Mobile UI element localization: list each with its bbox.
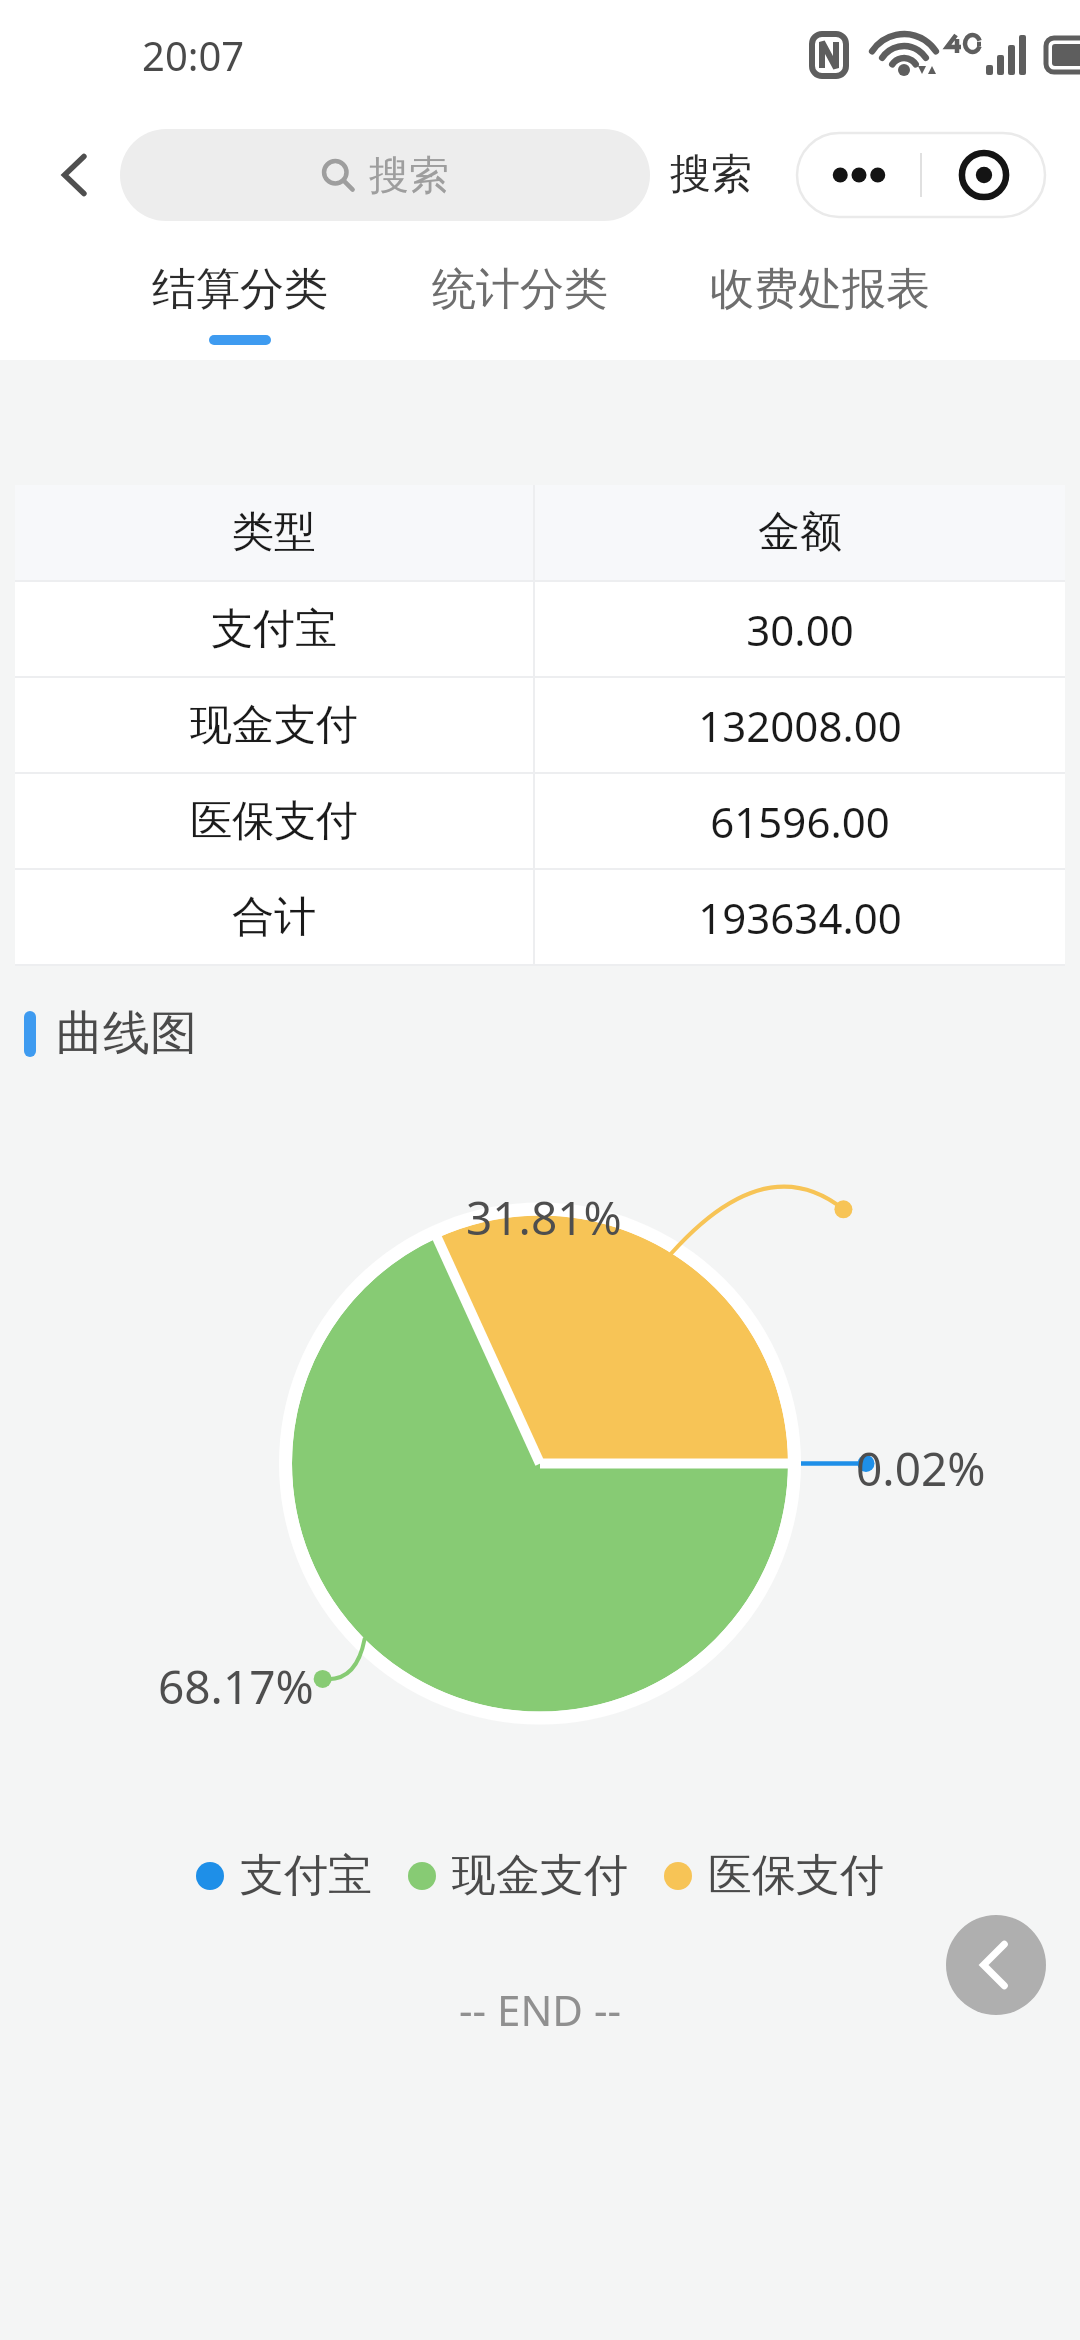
- button[interactable]: 结算分类: [100, 240, 380, 360]
- staticText: 现金支付: [452, 1848, 628, 1903]
- button[interactable]: 支付宝: [196, 1848, 372, 1903]
- staticText: 20:07: [142, 28, 245, 82]
- button[interactable]: 收费处报表: [659, 240, 980, 360]
- staticText: 支付宝: [211, 603, 337, 656]
- staticText: 合计: [232, 891, 316, 944]
- staticText: 曲线图: [56, 1004, 197, 1063]
- button[interactable]: 类型: [15, 485, 1065, 580]
- staticText: 61596.00: [710, 793, 890, 850]
- staticText: 搜索: [369, 150, 449, 200]
- staticText: 30.00: [746, 601, 854, 658]
- staticText: 结算分类: [152, 262, 328, 317]
- button[interactable]: More options: [797, 133, 920, 217]
- staticText: 31.81%: [466, 1186, 622, 1249]
- button[interactable]: 搜索: [120, 129, 650, 221]
- staticText: 193634.00: [698, 889, 902, 946]
- staticText: 统计分类: [432, 262, 608, 317]
- button[interactable]: 支付宝: [15, 582, 1065, 676]
- staticText: -- END --: [0, 1981, 1080, 2038]
- button[interactable]: 统计分类: [380, 240, 659, 360]
- staticText: 132008.00: [698, 697, 902, 754]
- button[interactable]: 合计: [15, 870, 1065, 964]
- staticText: 收费处报表: [710, 262, 930, 317]
- button[interactable]: Mini program menu: [922, 133, 1045, 217]
- button[interactable]: 医保支付: [664, 1848, 884, 1903]
- button[interactable]: 医保支付: [15, 774, 1065, 868]
- staticText: 68.17%: [158, 1655, 314, 1718]
- staticText: 搜索: [670, 149, 752, 201]
- button[interactable]: 现金支付: [15, 678, 1065, 772]
- staticText: 医保支付: [708, 1848, 884, 1903]
- button[interactable]: Back: [946, 1915, 1046, 2015]
- staticText: 0.02%: [856, 1437, 986, 1500]
- button[interactable]: 搜索: [670, 129, 752, 221]
- staticText: 支付宝: [240, 1848, 372, 1903]
- button[interactable]: 现金支付: [408, 1848, 628, 1903]
- staticText: 现金支付: [190, 699, 358, 752]
- staticText: 医保支付: [190, 795, 358, 848]
- staticText: 类型: [232, 506, 316, 559]
- staticText: 金额: [758, 506, 842, 559]
- button[interactable]: Back: [30, 129, 122, 221]
